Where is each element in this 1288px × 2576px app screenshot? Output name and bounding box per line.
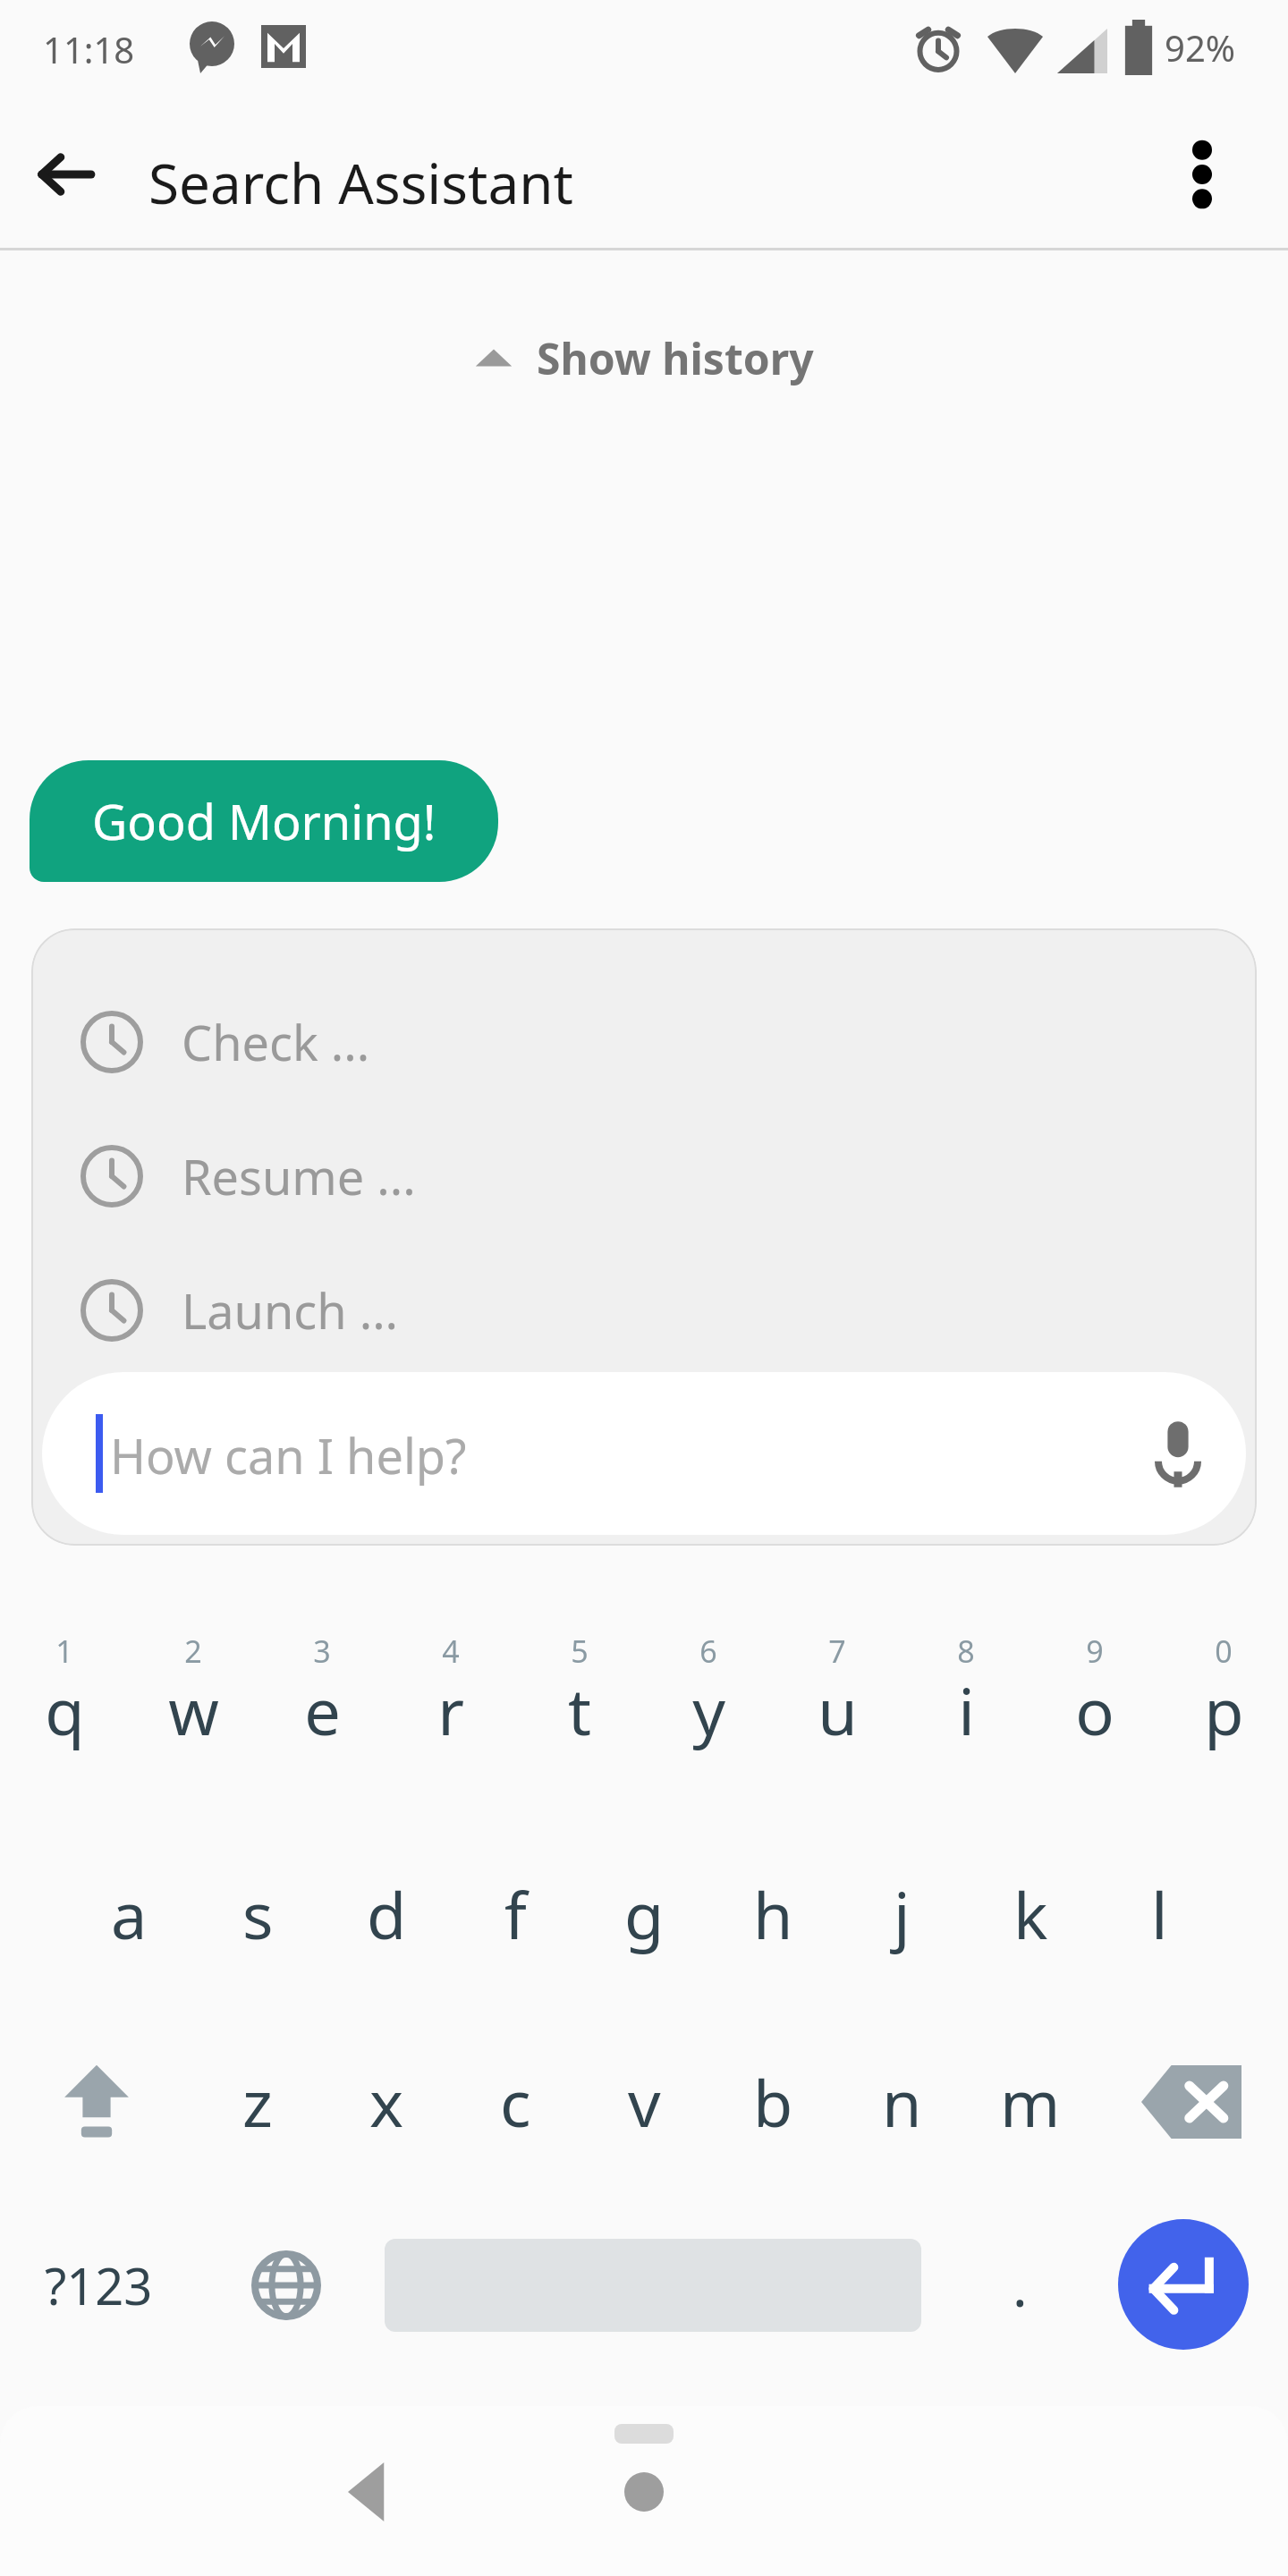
button[interactable]: Enter [1118, 2219, 1249, 2350]
staticText: u [818, 1666, 858, 1754]
button[interactable]: z [193, 2017, 322, 2187]
button[interactable]: Home [590, 2438, 698, 2546]
button[interactable]: b [708, 2017, 837, 2187]
staticText: f [504, 1870, 527, 1958]
staticText: r [437, 1666, 464, 1754]
button[interactable]: 2 [129, 1611, 258, 1799]
staticText: s [242, 1870, 274, 1958]
staticText: t [568, 1666, 591, 1754]
staticText: ?123 [45, 2251, 153, 2319]
button[interactable]: Back [315, 2438, 422, 2546]
staticText: m [1000, 2058, 1061, 2146]
button[interactable]: f [451, 1829, 580, 1999]
button[interactable]: ?123 [9, 2196, 188, 2375]
button[interactable]: How can I help? [42, 1372, 1246, 1535]
staticText: How can I help? [110, 1422, 467, 1488]
button[interactable]: Back [20, 128, 113, 221]
staticText: p [1204, 1666, 1244, 1754]
staticText: g [624, 1870, 665, 1958]
button[interactable]: 3 [258, 1611, 386, 1799]
button[interactable]: s [193, 1829, 322, 1999]
staticText: c [500, 2058, 531, 2146]
staticText: Resume ... [182, 1143, 416, 1209]
button[interactable]: Good Morning! [30, 760, 498, 882]
staticText: 6 [699, 1631, 717, 1672]
staticText: a [111, 1870, 148, 1958]
staticText: i [958, 1666, 975, 1754]
staticText: 1 [55, 1631, 73, 1672]
staticText: 11:18 [43, 25, 135, 73]
staticText: 9 [1086, 1631, 1104, 1672]
staticText: Show history [537, 329, 814, 387]
button[interactable]: Backspace [1095, 2017, 1288, 2187]
button[interactable]: a [64, 1829, 193, 1999]
button[interactable]: c [451, 2017, 580, 2187]
staticText: q [45, 1666, 85, 1754]
staticText: k [1013, 1870, 1048, 1958]
button[interactable]: n [837, 2017, 966, 2187]
staticText: w [168, 1666, 219, 1754]
button[interactable]: 5 [515, 1611, 644, 1799]
button[interactable]: h [708, 1829, 837, 1999]
button[interactable]: 9 [1030, 1611, 1159, 1799]
staticText: e [304, 1666, 341, 1754]
staticText: 2 [184, 1631, 202, 1672]
staticText: . [1013, 2248, 1028, 2323]
button[interactable]: More options [1156, 128, 1249, 221]
staticText: Check ... [182, 1009, 370, 1075]
button[interactable]: 1 [0, 1611, 129, 1799]
button[interactable]: Change language [206, 2196, 367, 2375]
staticText: y [692, 1666, 725, 1754]
button[interactable]: Shift [0, 2017, 193, 2187]
staticText: 5 [571, 1631, 589, 1672]
button[interactable]: Voice search [1135, 1411, 1221, 1497]
staticText: z [242, 2058, 273, 2146]
staticText: o [1075, 1666, 1114, 1754]
staticText: 92% [1165, 23, 1235, 72]
button[interactable]: Show history [0, 304, 1288, 411]
button[interactable]: Launch ... [31, 1252, 1257, 1368]
button[interactable]: d [322, 1829, 451, 1999]
button[interactable]: 7 [773, 1611, 902, 1799]
button[interactable]: Check ... [31, 984, 1257, 1100]
button[interactable]: v [580, 2017, 708, 2187]
staticText: 7 [828, 1631, 846, 1672]
button[interactable]: g [580, 1829, 708, 1999]
staticText: n [882, 2058, 922, 2146]
staticText: Launch ... [182, 1277, 399, 1343]
staticText: 3 [313, 1631, 331, 1672]
staticText: x [369, 2058, 404, 2146]
button[interactable]: 4 [386, 1611, 515, 1799]
button[interactable]: . [948, 2196, 1091, 2375]
button[interactable]: Resume ... [31, 1118, 1257, 1234]
button[interactable]: 6 [644, 1611, 773, 1799]
button[interactable]: l [1095, 1829, 1224, 1999]
button[interactable]: k [966, 1829, 1095, 1999]
staticText: 8 [957, 1631, 975, 1672]
staticText: Good Morning! [92, 788, 436, 854]
button[interactable]: m [966, 2017, 1095, 2187]
staticText: h [753, 1870, 793, 1958]
button[interactable]: x [322, 2017, 451, 2187]
staticText: j [894, 1870, 911, 1958]
button[interactable]: 0 [1159, 1611, 1288, 1799]
button[interactable]: j [837, 1829, 966, 1999]
staticText: l [1151, 1870, 1168, 1958]
staticText: 4 [442, 1631, 460, 1672]
staticText: Search Assistant [148, 145, 573, 220]
button[interactable]: 8 [902, 1611, 1030, 1799]
staticText: d [367, 1870, 407, 1958]
staticText: v [628, 2058, 661, 2146]
staticText: 0 [1215, 1631, 1233, 1672]
staticText: b [753, 2058, 793, 2146]
